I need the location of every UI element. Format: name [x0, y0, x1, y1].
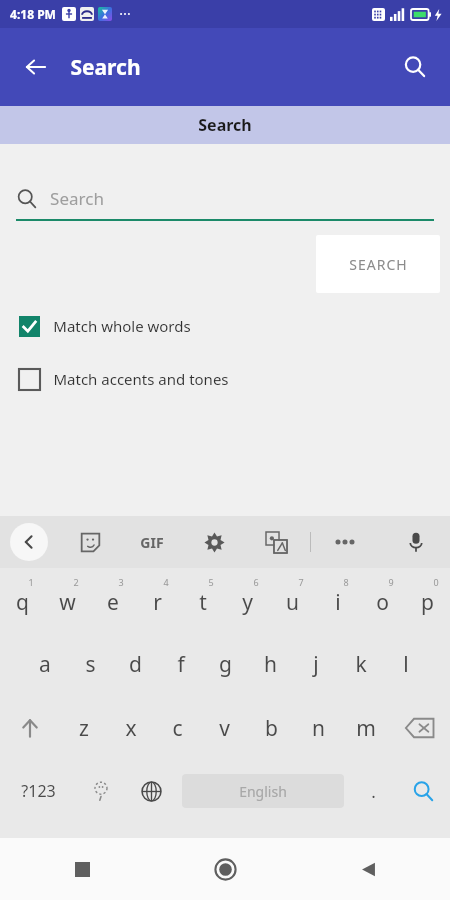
staticText: k [355, 650, 367, 679]
staticText: r [153, 588, 162, 617]
staticText: d [129, 650, 142, 679]
button[interactable]: 4 [135, 568, 180, 632]
button[interactable]: l [383, 632, 428, 696]
staticText: 2 [73, 576, 79, 588]
staticText: x [125, 714, 137, 743]
staticText: 6 [253, 576, 259, 588]
button[interactable]: 6 [225, 568, 270, 632]
button[interactable]: Search [396, 760, 450, 822]
button[interactable]: 1 [0, 568, 45, 632]
button[interactable]: More options [325, 522, 365, 562]
staticText: f [177, 650, 185, 679]
button[interactable]: d [113, 632, 158, 696]
button[interactable]: h [248, 632, 293, 696]
button[interactable]: s [68, 632, 113, 696]
button[interactable]: n [295, 696, 342, 760]
button[interactable]: k [338, 632, 383, 696]
staticText: i [335, 588, 341, 617]
staticText: n [312, 714, 325, 743]
button[interactable]: Settings [194, 522, 234, 562]
button[interactable]: 0 [405, 568, 450, 632]
button[interactable]: Emoji [76, 760, 126, 822]
button[interactable]: Stickers [70, 522, 110, 562]
staticText: Search [198, 114, 252, 136]
button[interactable]: 5 [180, 568, 225, 632]
staticText: 0 [433, 576, 439, 588]
button[interactable]: Collapse toolbar [10, 523, 48, 561]
button[interactable]: b [248, 696, 295, 760]
button[interactable]: ?123 [0, 760, 76, 822]
button[interactable]: m [342, 696, 389, 760]
button[interactable]: g [203, 632, 248, 696]
staticText: GIF [140, 533, 164, 552]
staticText: 5 [208, 576, 214, 588]
staticText: SEARCH [349, 255, 408, 274]
staticText: h [264, 650, 277, 679]
button[interactable]: Search [16, 176, 434, 221]
staticText: . [371, 780, 376, 803]
staticText: 4 [163, 576, 169, 588]
staticText: 4:18 PM [10, 6, 56, 22]
staticText: w [59, 588, 76, 617]
button[interactable]: c [154, 696, 201, 760]
staticText: Match accents and tones [53, 369, 229, 389]
staticText: e [107, 588, 119, 617]
staticText: p [421, 588, 434, 617]
button[interactable]: 7 [270, 568, 315, 632]
button[interactable]: Match accents and tones [0, 368, 450, 390]
button[interactable]: v [201, 696, 248, 760]
staticText: 3 [118, 576, 124, 588]
button[interactable]: Back [14, 45, 58, 89]
button[interactable]: 9 [360, 568, 405, 632]
staticText: 9 [388, 576, 394, 588]
button[interactable]: Backspace [389, 696, 450, 760]
staticText: u [286, 588, 299, 617]
button[interactable]: GIF [132, 522, 172, 562]
button[interactable]: Change language [126, 760, 176, 822]
button[interactable]: 2 [45, 568, 90, 632]
staticText: l [403, 650, 409, 679]
button[interactable]: f [158, 632, 203, 696]
button[interactable]: Home [203, 847, 247, 891]
button[interactable]: Recents [60, 847, 104, 891]
staticText: s [85, 650, 96, 679]
button[interactable]: 8 [315, 568, 360, 632]
staticText: Search [70, 53, 141, 82]
button[interactable]: z [60, 696, 107, 760]
staticText: c [172, 714, 183, 743]
button[interactable]: Search [392, 44, 438, 90]
staticText: j [313, 650, 319, 679]
button[interactable]: English [182, 774, 344, 808]
button[interactable]: Back [346, 847, 390, 891]
staticText: b [265, 714, 278, 743]
staticText: ?123 [21, 780, 56, 802]
button[interactable]: Voice input [396, 522, 436, 562]
button[interactable]: . [350, 760, 396, 822]
staticText: 1 [28, 576, 34, 588]
button[interactable]: x [107, 696, 154, 760]
button[interactable]: Translate [256, 522, 296, 562]
staticText: English [239, 782, 287, 801]
button[interactable]: 3 [90, 568, 135, 632]
button[interactable]: SEARCH [316, 235, 440, 293]
button[interactable]: Match whole words [0, 315, 450, 337]
staticText: 7 [298, 576, 304, 588]
button[interactable]: a [22, 632, 68, 696]
button[interactable]: j [293, 632, 338, 696]
staticText: y [242, 588, 253, 617]
staticText: z [79, 714, 89, 743]
staticText: Search [50, 187, 104, 210]
staticText: o [376, 588, 389, 617]
staticText: v [219, 714, 230, 743]
staticText: t [199, 588, 207, 617]
staticText: g [219, 650, 232, 679]
staticText: q [16, 588, 29, 617]
staticText: 8 [343, 576, 349, 588]
staticText: m [356, 714, 376, 743]
staticText: Match whole words [53, 316, 191, 336]
staticText: a [39, 650, 51, 679]
button[interactable]: Shift [0, 696, 60, 760]
